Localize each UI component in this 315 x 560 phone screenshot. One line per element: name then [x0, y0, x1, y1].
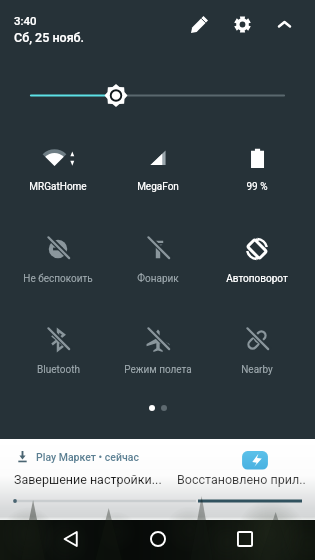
button[interactable]: Home — [142, 523, 174, 555]
button[interactable]: Edit — [182, 7, 216, 41]
staticText: Не беспокоить — [23, 273, 93, 285]
staticText: Play Маркет • сейчас — [36, 451, 139, 463]
button[interactable]: Collapse — [267, 7, 301, 41]
button[interactable]: Settings — [225, 7, 259, 41]
button[interactable]: MegaFon — [108, 141, 208, 189]
button[interactable]: 99 % — [207, 141, 307, 189]
staticText: Nearby — [241, 364, 273, 376]
staticText: Завершение настройки... — [14, 472, 162, 487]
button[interactable]: Play Маркет • сейчас — [0, 439, 315, 520]
staticText: 3:40 — [14, 14, 37, 27]
staticText: MegaFon — [137, 181, 179, 193]
staticText: MRGatHome — [29, 181, 87, 193]
button[interactable]: Не беспокоить — [8, 233, 108, 281]
staticText: Фонарик — [137, 273, 179, 285]
staticText: Автоповорот — [226, 273, 288, 285]
button[interactable]: MRGatHome — [8, 141, 108, 189]
button[interactable]: Режим полета — [108, 324, 208, 372]
staticText: Восстановлено прил.. — [177, 472, 306, 487]
button[interactable]: Nearby — [207, 324, 307, 372]
staticText: Сб, 25 нояб. — [14, 30, 85, 45]
button[interactable]: Фонарик — [108, 233, 208, 281]
button[interactable]: Автоповорот — [207, 233, 307, 281]
button[interactable]: Bluetooth — [8, 324, 108, 372]
button[interactable]: Brightness — [0, 80, 315, 112]
staticText: Bluetooth — [37, 364, 80, 376]
button[interactable]: Recents — [229, 523, 261, 555]
staticText: 99 % — [246, 181, 268, 193]
button[interactable]: Back — [55, 523, 87, 555]
staticText: Режим полета — [124, 364, 192, 376]
